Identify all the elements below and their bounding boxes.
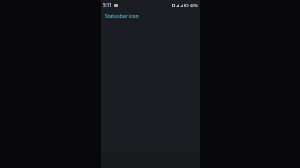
other: Notification	[114, 4, 118, 7]
other: Second signal	[180, 4, 183, 7]
other: Battery 40 percent	[184, 4, 189, 7]
staticText: 5:11	[103, 2, 112, 8]
other: Vibrate mode	[172, 4, 175, 7]
staticText: Statusbar icon	[105, 13, 139, 20]
staticText: 40%	[190, 3, 198, 8]
other: Signal strength	[176, 4, 179, 7]
button[interactable]: Statusbar icon	[101, 10, 200, 22]
